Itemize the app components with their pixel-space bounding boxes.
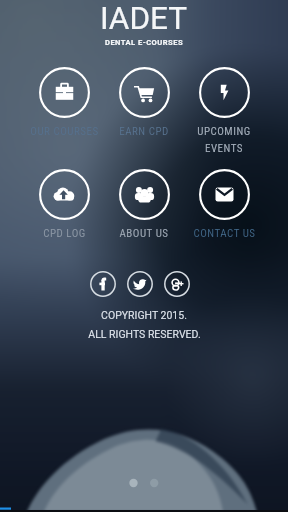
button[interactable]: Facebook <box>90 271 116 297</box>
button[interactable]: ABOUT US <box>104 169 184 240</box>
staticText: IADET <box>100 0 188 37</box>
button[interactable]: UPCOMING EVENTS <box>184 67 264 154</box>
button[interactable]: Google Plus <box>164 271 190 297</box>
button[interactable]: OUR COURSES <box>24 67 104 138</box>
button[interactable]: CONTACT US <box>184 169 264 240</box>
button[interactable]: EARN CPD <box>104 67 184 138</box>
staticText: EARN CPD <box>119 125 169 138</box>
staticText: ALL RIGHTS RESERVED. <box>88 328 201 340</box>
staticText: UPCOMING EVENTS <box>197 125 251 154</box>
staticText: OUR COURSES <box>30 125 99 138</box>
staticText: CPD LOG <box>43 227 86 240</box>
button[interactable]: CPD LOG <box>24 169 104 240</box>
staticText: COPYRIGHT 2015. <box>101 309 187 321</box>
staticText: CONTACT US <box>193 227 256 240</box>
button[interactable]: Twitter <box>127 271 153 297</box>
staticText: DENTAL E-COURSES <box>105 38 184 47</box>
staticText: ABOUT US <box>119 227 169 240</box>
